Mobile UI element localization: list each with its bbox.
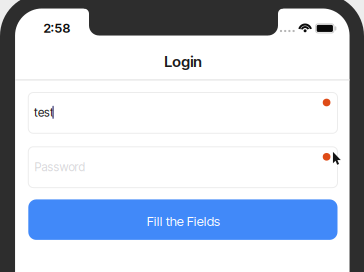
staticText: 2:58 <box>43 20 70 36</box>
staticText: test <box>34 105 54 120</box>
staticText: Fill the Fields <box>147 213 220 229</box>
staticText: Password <box>34 160 85 174</box>
button[interactable]: Fill the Fields <box>28 199 337 240</box>
button[interactable]: Password <box>28 147 337 188</box>
staticText: Login <box>164 52 202 70</box>
button[interactable]: Username <box>28 92 337 133</box>
